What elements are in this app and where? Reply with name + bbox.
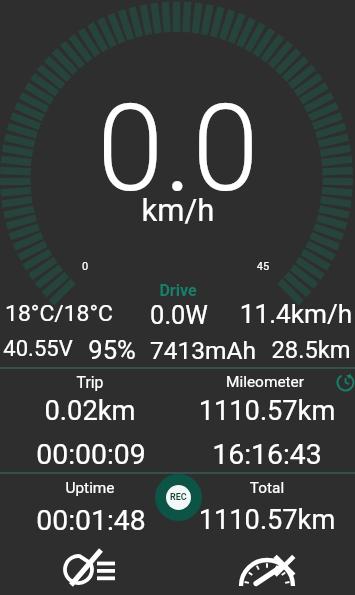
button[interactable] [205,474,355,534]
staticText: Total [117,479,355,497]
staticText: 00:00:09 [0,438,241,471]
button[interactable]: Headlight off [54,541,126,595]
staticText: 0.0W [29,300,329,330]
staticText: 18°C/18°C [0,300,209,327]
staticText: Trip [0,373,240,392]
button[interactable] [178,369,355,472]
staticText: 28.5km [161,336,355,364]
staticText: Mileometer [115,373,355,391]
staticText: 0.02km [0,395,240,427]
staticText: 16:16:43 [117,438,355,471]
staticText: km/h [28,192,328,228]
button[interactable]: Record [155,474,202,521]
staticText: 45 [113,260,355,273]
staticText: Uptime [0,479,240,497]
button[interactable] [0,474,150,534]
staticText: 00:01:48 [0,504,241,537]
staticText: 0.0 [28,79,328,220]
staticText: 1110.57km [117,395,355,427]
staticText: 95% [0,335,262,365]
button[interactable] [0,369,177,472]
button[interactable]: History [336,373,355,392]
staticText: REC [170,492,187,503]
staticText: 1110.57km [117,504,355,536]
button[interactable]: Cruise control off [233,541,301,593]
staticText: 0 [0,260,235,273]
staticText: 40.55V [0,336,188,362]
staticText: 7413mAh [53,336,353,365]
staticText: 11.4km/h [146,299,355,330]
staticText: Drive [28,281,328,300]
